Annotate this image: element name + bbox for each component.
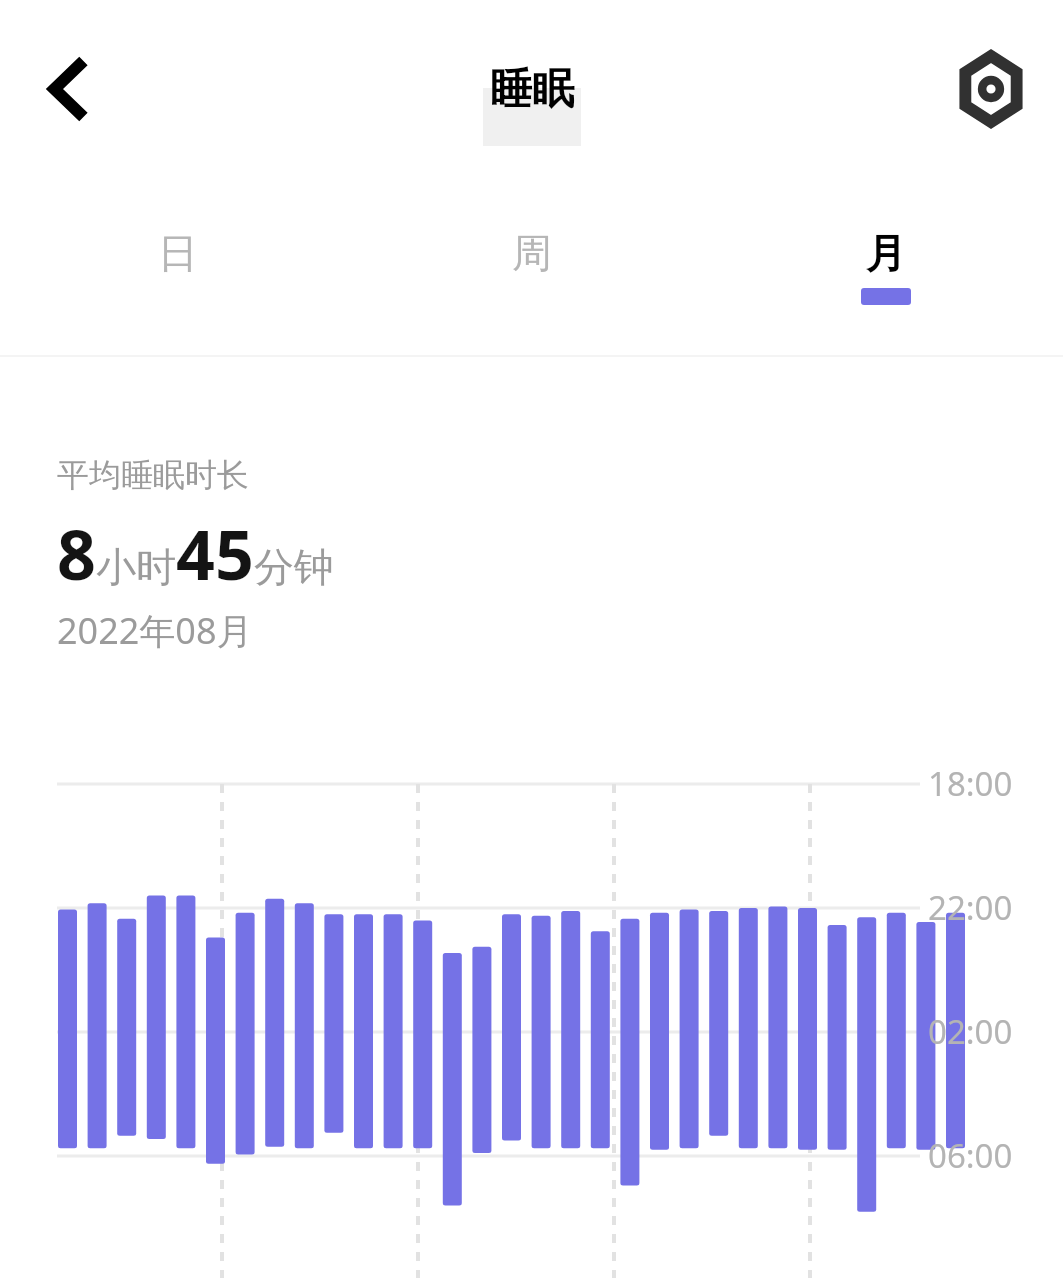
staticText: 周 [512, 228, 552, 278]
button[interactable]: Settings [945, 43, 1037, 135]
button[interactable]: 月 [709, 178, 1063, 355]
staticText: 平均睡眠时长 [57, 455, 249, 495]
staticText: 8 [57, 507, 96, 600]
button[interactable]: 周 [355, 178, 709, 355]
staticText: 45 [176, 507, 254, 600]
staticText: 月 [866, 228, 906, 278]
staticText: 日 [158, 228, 198, 278]
staticText: 18:00 [928, 761, 1013, 806]
button[interactable]: 日 [0, 178, 355, 355]
staticText: 小时 [96, 542, 176, 592]
staticText: 分钟 [254, 542, 334, 592]
staticText: 06:00 [928, 1133, 1013, 1178]
staticText: 睡眠 [490, 63, 574, 116]
button[interactable]: Back [28, 47, 112, 131]
staticText: 22:00 [928, 885, 1013, 930]
staticText: 2022年08月 [57, 606, 253, 655]
staticText: 02:00 [928, 1009, 1013, 1054]
